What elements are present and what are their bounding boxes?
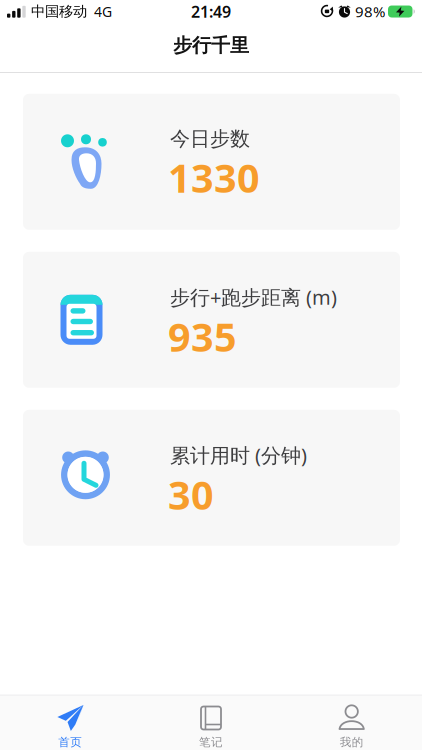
staticText: 累计用时 (分钟) bbox=[170, 441, 307, 468]
staticText: 935 bbox=[168, 309, 237, 363]
staticText: 98% bbox=[355, 1, 385, 22]
button[interactable]: 我的 bbox=[281, 694, 422, 750]
staticText: 今日步数 bbox=[170, 126, 250, 151]
staticText: 21:49 bbox=[191, 1, 231, 22]
staticText: 1330 bbox=[168, 150, 260, 204]
button[interactable]: 首页 bbox=[0, 694, 141, 750]
staticText: 我的 bbox=[340, 735, 364, 749]
staticText: 30 bbox=[168, 467, 214, 521]
staticText: 笔记 bbox=[199, 735, 223, 749]
staticText: 4G bbox=[94, 2, 112, 21]
staticText: 中国移动 bbox=[31, 2, 87, 20]
staticText: 步行+跑步距离 (m) bbox=[170, 283, 337, 310]
staticText: 首页 bbox=[58, 735, 82, 749]
button[interactable]: 笔记 bbox=[141, 694, 281, 750]
staticText: 步行千里 bbox=[173, 33, 249, 57]
